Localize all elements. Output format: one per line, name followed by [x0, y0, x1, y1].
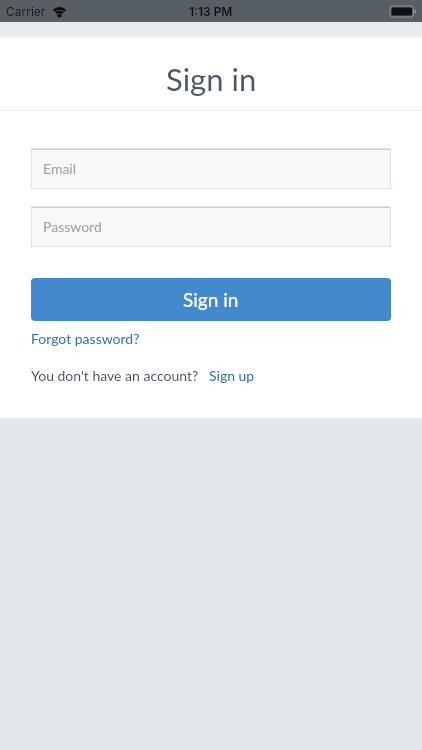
button[interactable]: Sign in [31, 278, 391, 321]
staticText: Forgot password? [31, 330, 140, 347]
staticText: Sign in [183, 288, 239, 311]
button[interactable]: Forgot password? [31, 330, 140, 347]
staticText: Carrier [6, 4, 46, 19]
staticText: 1:13 PM [189, 4, 233, 19]
button[interactable]: Sign up [209, 367, 255, 384]
button[interactable]: Email [31, 148, 391, 189]
staticText: Email [43, 160, 77, 177]
staticText: Password [43, 218, 102, 235]
staticText: Sign up [209, 367, 255, 384]
staticText: You don't have an account? [31, 367, 199, 384]
staticText: Sign in [166, 60, 257, 97]
button[interactable]: Password [31, 206, 391, 247]
